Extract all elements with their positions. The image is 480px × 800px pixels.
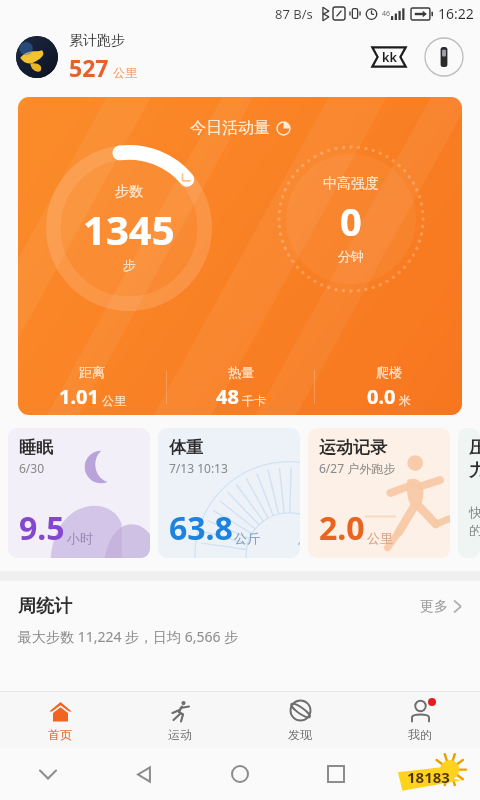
button[interactable]: 热量 (167, 364, 314, 410)
staticText: 公斤 (234, 530, 260, 546)
staticText: 体重 (169, 437, 203, 458)
staticText: 距离 (79, 364, 105, 380)
staticText: 小时 (67, 530, 93, 546)
button[interactable]: Home (192, 748, 288, 800)
button[interactable]: Back (96, 748, 192, 800)
staticText: 527 (69, 52, 109, 83)
staticText: 16:22 (438, 4, 474, 23)
button[interactable]: 周统计 (0, 581, 480, 652)
staticText: 爬楼 (376, 364, 402, 380)
button[interactable]: 压力 (458, 428, 480, 558)
staticText: 周统计 (18, 595, 72, 618)
staticText: 更多 (420, 598, 448, 616)
staticText: 步 (123, 257, 136, 273)
staticText: 87 B/s (275, 5, 313, 23)
staticText: 首页 (48, 727, 72, 742)
other: Profile (408, 699, 433, 724)
button[interactable]: 今日活动量 (18, 97, 462, 415)
staticText: 48 (216, 383, 239, 410)
button[interactable]: kk (370, 45, 408, 69)
staticText: 千卡 (242, 393, 266, 408)
staticText: 快 (469, 504, 480, 520)
staticText: 分钟 (338, 248, 364, 264)
staticText: 1.01 (59, 383, 99, 410)
button[interactable]: 爬楼 (315, 364, 462, 410)
staticText: 公里 (367, 530, 393, 546)
button[interactable]: 运动记录 (308, 428, 450, 558)
staticText: 运动 (168, 727, 192, 742)
staticText: 1345 (83, 202, 175, 256)
button[interactable]: Recent apps (288, 748, 384, 800)
staticText: 压力 (469, 437, 480, 481)
staticText: 63.8 (169, 506, 233, 550)
staticText: 18183 (407, 767, 450, 787)
other: Exercise (168, 699, 193, 724)
staticText: 发现 (288, 727, 312, 742)
other: Discover (288, 699, 313, 724)
staticText: 7/13 10:13 (169, 460, 228, 476)
staticText: kk (382, 49, 397, 65)
staticText: 热量 (228, 364, 254, 380)
button[interactable]: 睡眠 (8, 428, 150, 558)
staticText: 9.5 (19, 506, 65, 550)
other: Home (48, 699, 73, 724)
staticText: 睡眠 (19, 437, 53, 458)
button[interactable]: Discover (240, 692, 360, 748)
staticText: 6/27 户外跑步 (319, 460, 396, 476)
staticText: 最大步数 11,224 步，日均 6,566 步 (18, 627, 239, 646)
button[interactable]: 累计跑步 (69, 32, 137, 83)
staticText: 公里 (113, 65, 137, 80)
button[interactable]: 距离 (18, 364, 166, 410)
staticText: 步数 (115, 183, 143, 201)
staticText: 我的 (408, 727, 432, 742)
button[interactable]: 体重 (158, 428, 300, 558)
staticText: 累计跑步 (69, 32, 125, 50)
staticText: 运动记录 (319, 437, 387, 458)
button[interactable]: Profile (360, 692, 480, 748)
staticText: 2.0 (319, 506, 365, 550)
staticText: 的 (469, 522, 480, 538)
button[interactable]: My device (424, 37, 464, 77)
staticText: 中高强度 (323, 175, 379, 193)
staticText: 0 (340, 195, 362, 247)
staticText: 米 (399, 393, 411, 408)
button[interactable]: Home (0, 692, 120, 748)
staticText: 公里 (102, 393, 126, 408)
button[interactable]: Exercise (120, 692, 240, 748)
staticText: 6/30 (19, 460, 45, 476)
staticText: 今日活动量 (190, 118, 270, 138)
button[interactable]: Profile avatar (16, 36, 58, 78)
staticText: 0.0 (367, 383, 396, 410)
button[interactable]: Hide keyboard (0, 748, 96, 800)
staticText: 46 (382, 9, 391, 19)
